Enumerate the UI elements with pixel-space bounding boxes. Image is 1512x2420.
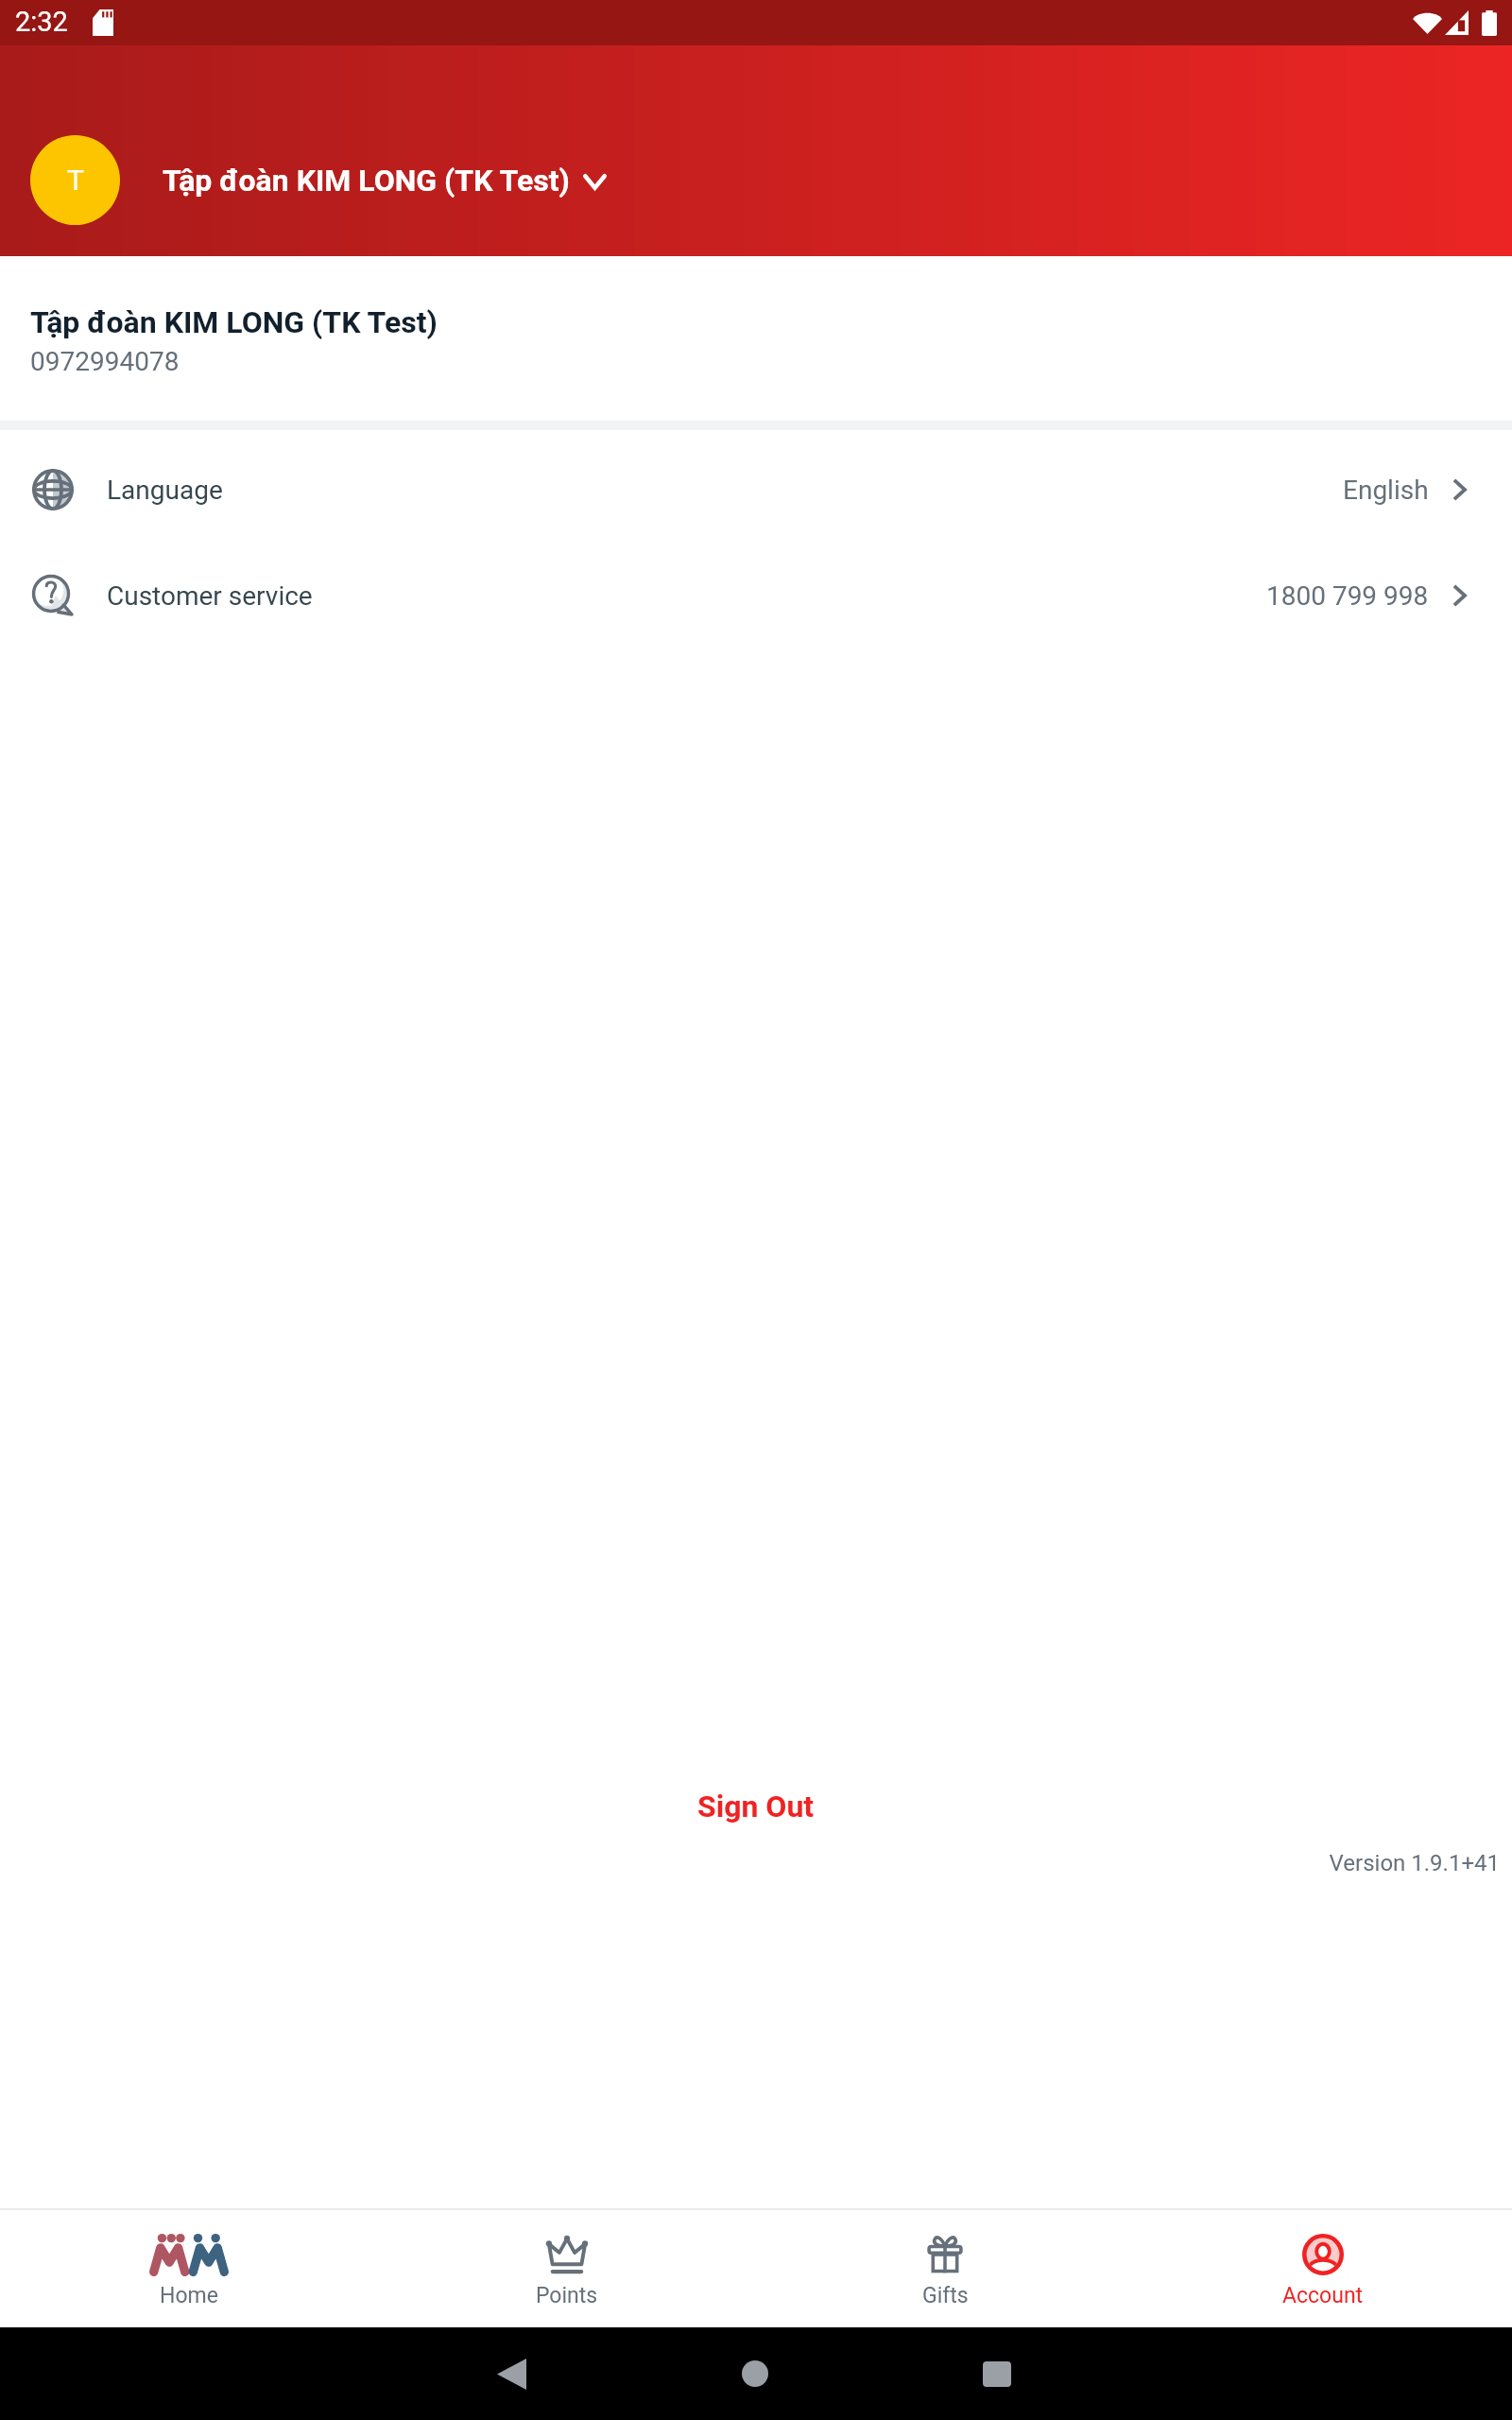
- staticText: Home: [160, 2283, 218, 2308]
- staticText: 0972994078: [30, 346, 180, 377]
- button[interactable]: Customer service: [0, 543, 1512, 648]
- button[interactable]: Home: [0, 2210, 378, 2327]
- button[interactable]: Points: [378, 2210, 756, 2327]
- staticText: Points: [536, 2283, 598, 2308]
- staticText: Sign Out: [697, 1789, 815, 1824]
- staticText: Gifts: [922, 2283, 969, 2308]
- staticText: T: [67, 164, 84, 197]
- staticText: English: [1343, 475, 1429, 506]
- staticText: Tập đoàn KIM LONG (TK Test): [30, 304, 438, 340]
- other: Back: [497, 2359, 526, 2390]
- button[interactable]: T: [30, 135, 607, 225]
- staticText: Account: [1282, 2283, 1364, 2308]
- staticText: 2:32: [15, 6, 68, 38]
- button[interactable]: Gifts: [756, 2210, 1134, 2327]
- button[interactable]: Sign Out: [679, 1781, 833, 1832]
- staticText: Tập đoàn KIM LONG (TK Test): [163, 163, 570, 199]
- button[interactable]: Language: [0, 437, 1512, 543]
- staticText: Customer service: [107, 580, 313, 612]
- button[interactable]: Account: [1134, 2210, 1512, 2327]
- staticText: Language: [107, 475, 223, 506]
- other: Home: [742, 2360, 768, 2387]
- staticText: 1800 799 998: [1266, 580, 1429, 612]
- other: Recents: [983, 2361, 1011, 2387]
- staticText: Version 1.9.1+41: [0, 1850, 1500, 1876]
